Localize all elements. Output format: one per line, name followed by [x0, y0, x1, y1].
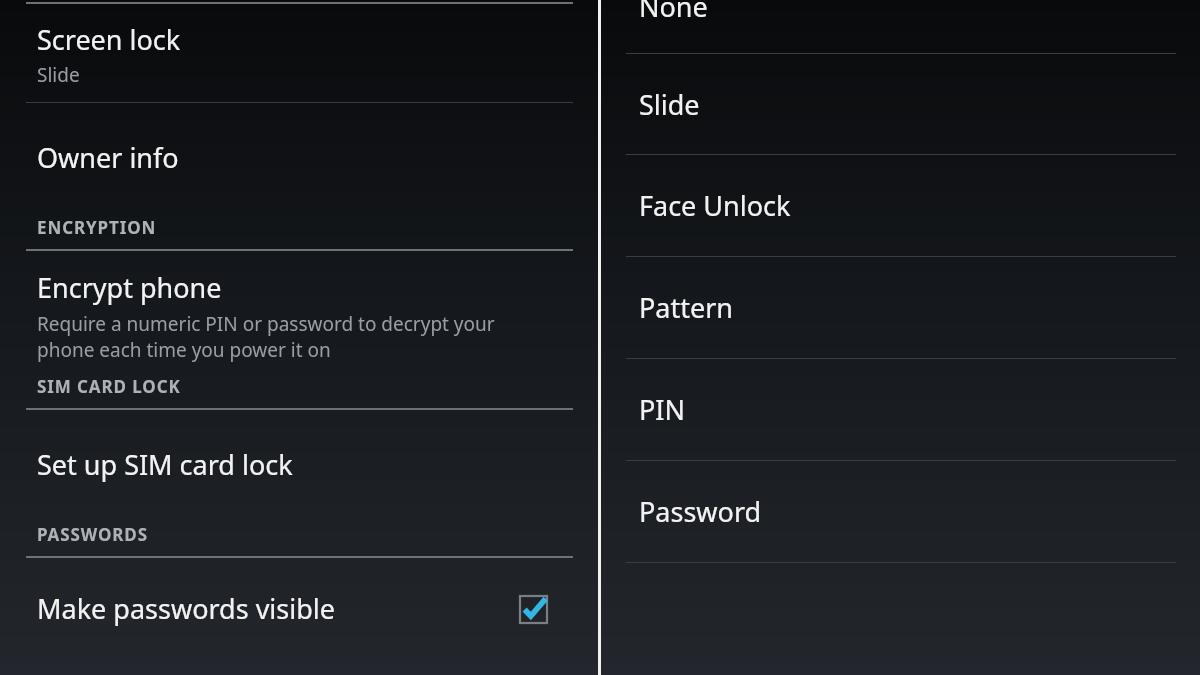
- staticText: Require a numeric PIN or password to dec…: [37, 311, 548, 363]
- staticText: PASSWORDS: [37, 523, 148, 546]
- button[interactable]: Encrypt phone: [0, 251, 598, 369]
- staticText: Slide: [639, 86, 700, 123]
- button[interactable]: Make passwords visible: [0, 558, 598, 657]
- button[interactable]: Set up SIM card lock: [0, 410, 598, 523]
- button[interactable]: Password: [601, 461, 1200, 562]
- staticText: Set up SIM card lock: [37, 446, 293, 483]
- staticText: Face Unlock: [639, 187, 791, 224]
- staticText: Encrypt phone: [37, 269, 222, 306]
- button[interactable]: PIN: [601, 359, 1200, 460]
- staticText: None: [639, 0, 708, 25]
- button[interactable]: None: [601, 0, 1200, 53]
- staticText: Screen lock: [37, 21, 181, 58]
- button[interactable]: Screen lock: [0, 0, 598, 102]
- staticText: SIM CARD LOCK: [37, 375, 181, 398]
- staticText: Slide: [37, 62, 80, 88]
- staticText: Make passwords visible: [37, 590, 336, 627]
- staticText: Pattern: [639, 289, 734, 326]
- button[interactable]: Owner info: [0, 103, 598, 216]
- staticText: Owner info: [37, 139, 179, 176]
- staticText: PIN: [639, 391, 686, 428]
- staticText: ENCRYPTION: [37, 216, 157, 239]
- staticText: Password: [639, 493, 762, 530]
- button[interactable]: Make passwords visible checkbox: [516, 592, 550, 626]
- button[interactable]: Pattern: [601, 257, 1200, 358]
- button[interactable]: Face Unlock: [601, 155, 1200, 256]
- button[interactable]: Slide: [601, 54, 1200, 154]
